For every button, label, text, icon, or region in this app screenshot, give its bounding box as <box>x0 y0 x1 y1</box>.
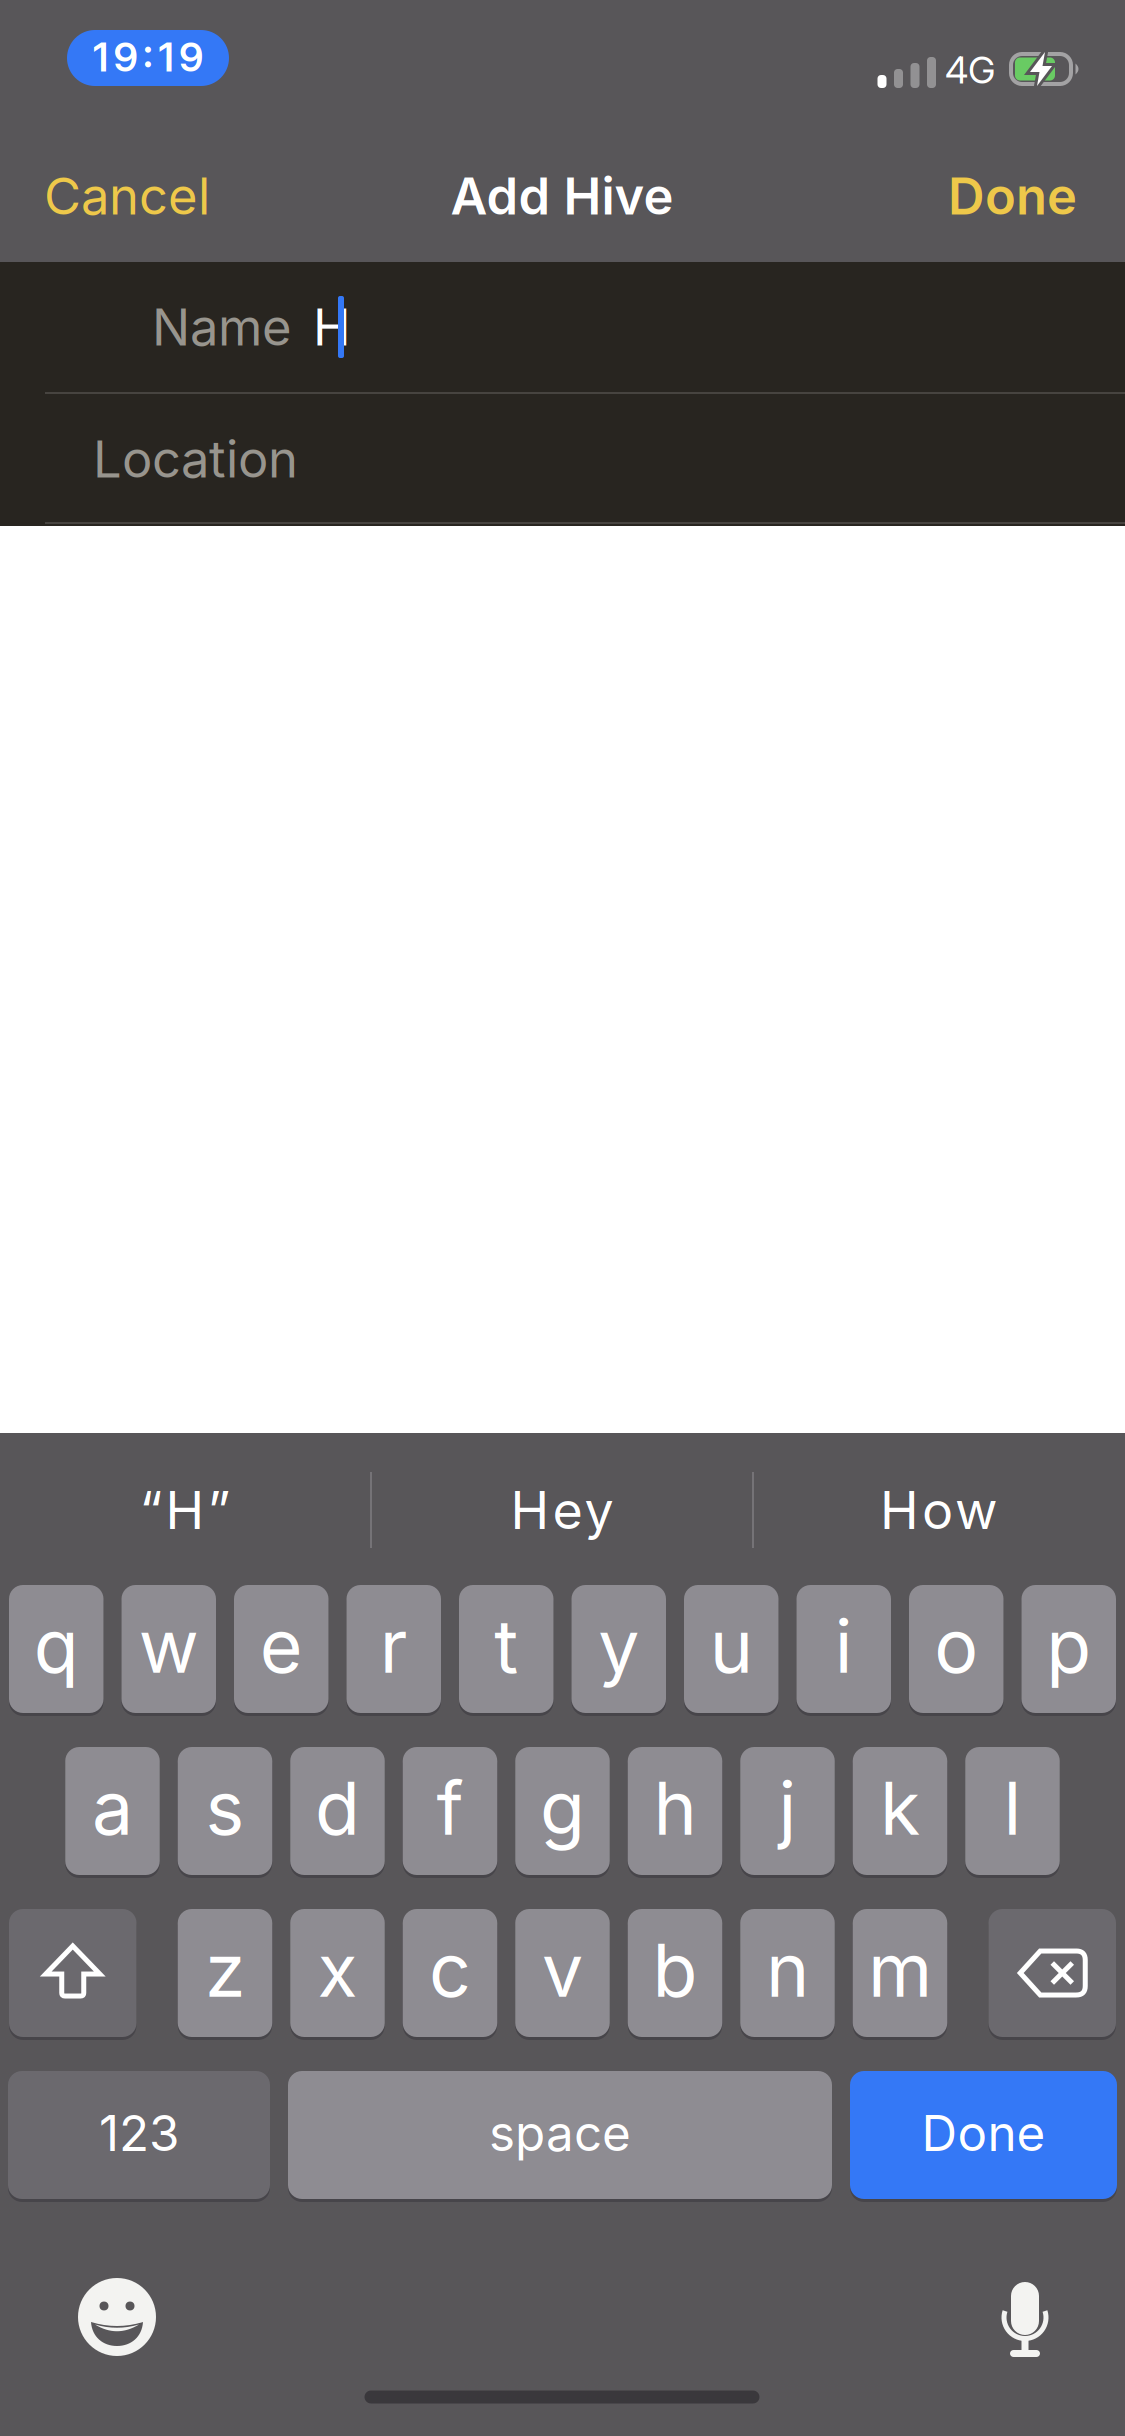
staticText: a <box>92 1765 133 1851</box>
button[interactable]: u <box>684 1583 778 1715</box>
staticText: 123 <box>99 2104 179 2162</box>
button[interactable]: v <box>515 1907 610 2039</box>
staticText: Cancel <box>44 166 210 226</box>
button[interactable]: g <box>515 1745 610 1877</box>
staticText: t <box>494 1603 518 1689</box>
staticText: Done <box>921 2104 1045 2162</box>
button[interactable]: p <box>1021 1583 1116 1715</box>
button[interactable]: j <box>740 1745 835 1877</box>
staticText: r <box>380 1603 408 1689</box>
staticText: y <box>598 1603 639 1689</box>
staticText: v <box>542 1927 583 2013</box>
staticText: e <box>260 1603 303 1689</box>
staticText: f <box>436 1765 463 1851</box>
button[interactable]: t <box>459 1583 553 1715</box>
staticText: H <box>313 297 351 357</box>
button[interactable]: Hey <box>377 1455 747 1565</box>
button[interactable]: z <box>178 1907 272 2039</box>
button[interactable] <box>78 2278 156 2356</box>
button[interactable] <box>9 1907 136 2039</box>
button[interactable]: k <box>853 1745 947 1877</box>
button[interactable]: a <box>65 1745 160 1877</box>
staticText: h <box>653 1765 696 1851</box>
staticText: o <box>934 1603 978 1689</box>
button[interactable]: Cancel <box>44 141 344 251</box>
staticText: c <box>429 1927 471 2013</box>
staticText: w <box>139 1603 199 1689</box>
staticText: Done <box>948 166 1077 226</box>
staticText: Hey <box>510 1479 613 1541</box>
button[interactable]: “H” <box>5 1455 365 1565</box>
staticText: l <box>1003 1765 1021 1851</box>
button[interactable]: s <box>178 1745 272 1877</box>
staticText: m <box>868 1927 932 2013</box>
button[interactable] <box>988 1907 1116 2039</box>
staticText: Add Hive <box>450 166 673 226</box>
button[interactable]: o <box>909 1583 1003 1715</box>
staticText: 4G <box>945 48 995 92</box>
button[interactable]: Location <box>0 394 1125 524</box>
button[interactable]: f <box>403 1745 497 1877</box>
button[interactable]: Done <box>777 141 1077 251</box>
button[interactable]: space <box>288 2069 832 2201</box>
button[interactable]: n <box>740 1907 835 2039</box>
staticText: q <box>34 1603 79 1689</box>
staticText: Name <box>152 297 292 357</box>
button[interactable]: y <box>571 1583 666 1715</box>
staticText: j <box>778 1765 796 1851</box>
staticText: 19:19 <box>93 33 203 81</box>
button[interactable]: i <box>796 1583 891 1715</box>
button[interactable]: How <box>759 1455 1119 1565</box>
staticText: x <box>317 1927 357 2013</box>
staticText: z <box>205 1927 245 2013</box>
staticText: s <box>205 1765 244 1851</box>
staticText: i <box>835 1603 853 1689</box>
button[interactable]: Name <box>0 262 1125 392</box>
button[interactable]: 19:19 <box>67 30 229 86</box>
staticText: p <box>1046 1603 1091 1689</box>
button[interactable]: Done <box>850 2069 1117 2201</box>
button[interactable]: r <box>346 1583 441 1715</box>
button[interactable]: e <box>234 1583 328 1715</box>
staticText: b <box>652 1927 697 2013</box>
button[interactable] <box>1001 2282 1049 2358</box>
staticText: Location <box>93 429 298 489</box>
staticText: d <box>315 1765 360 1851</box>
button[interactable]: c <box>403 1907 497 2039</box>
staticText: space <box>489 2104 631 2162</box>
button[interactable]: h <box>628 1745 722 1877</box>
staticText: How <box>880 1479 998 1541</box>
staticText: “H” <box>139 1479 230 1541</box>
button[interactable]: q <box>9 1583 103 1715</box>
button[interactable]: 123 <box>8 2069 270 2201</box>
button[interactable]: d <box>290 1745 385 1877</box>
staticText: g <box>540 1765 585 1851</box>
staticText: u <box>710 1603 753 1689</box>
button[interactable]: m <box>853 1907 947 2039</box>
button[interactable]: x <box>290 1907 385 2039</box>
button[interactable]: l <box>965 1745 1060 1877</box>
staticText: k <box>880 1765 920 1851</box>
staticText: n <box>766 1927 809 2013</box>
button[interactable]: b <box>628 1907 722 2039</box>
button[interactable]: w <box>121 1583 216 1715</box>
